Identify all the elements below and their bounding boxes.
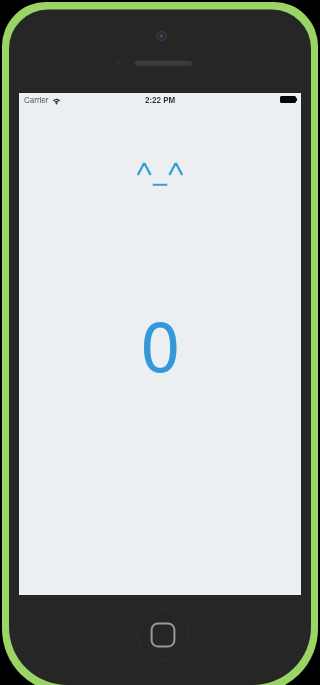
staticText: 0	[141, 292, 180, 392]
staticText: Carrier	[24, 94, 49, 105]
staticText: 2:22 PM	[145, 94, 176, 105]
button[interactable]: Home	[137, 609, 189, 661]
